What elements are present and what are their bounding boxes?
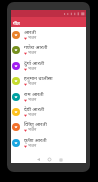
staticText: भजन: [28, 127, 37, 133]
button[interactable]: हनुमान चालीसा: [11, 73, 86, 88]
staticText: भजन: [28, 143, 37, 149]
staticText: भजन: [28, 112, 37, 118]
staticText: गणेश आरती: [24, 43, 48, 50]
staticText: भजन: [28, 50, 37, 56]
staticText: आरती: [24, 28, 36, 35]
staticText: राम आरती: [24, 90, 44, 97]
staticText: कृष्ण आरती: [24, 136, 47, 143]
staticText: भजन: [28, 81, 37, 87]
button[interactable]: आरती: [11, 27, 86, 42]
button[interactable]: Back: [33, 156, 44, 163]
staticText: हनुमान चालीसा: [24, 74, 53, 81]
button[interactable]: Recents: [55, 156, 66, 163]
staticText: भजन: [28, 35, 37, 41]
staticText: विष्णु आरती: [24, 120, 47, 127]
button[interactable]: राम आरती: [11, 89, 86, 104]
button[interactable]: गीत: [11, 17, 86, 27]
button[interactable]: विष्णु आरती: [11, 119, 86, 134]
staticText: भजन: [28, 97, 37, 103]
button[interactable]: Home: [44, 156, 55, 163]
staticText: गीत: [13, 20, 20, 26]
button[interactable]: देवी आरती: [11, 104, 86, 119]
button[interactable]: कृष्ण आरती: [11, 135, 86, 150]
staticText: दुर्गा आरती: [24, 59, 45, 66]
staticText: देवी आरती: [24, 105, 45, 112]
staticText: भजन: [28, 66, 37, 72]
button[interactable]: दुर्गा आरती: [11, 58, 86, 73]
button[interactable]: गणेश आरती: [11, 42, 86, 57]
